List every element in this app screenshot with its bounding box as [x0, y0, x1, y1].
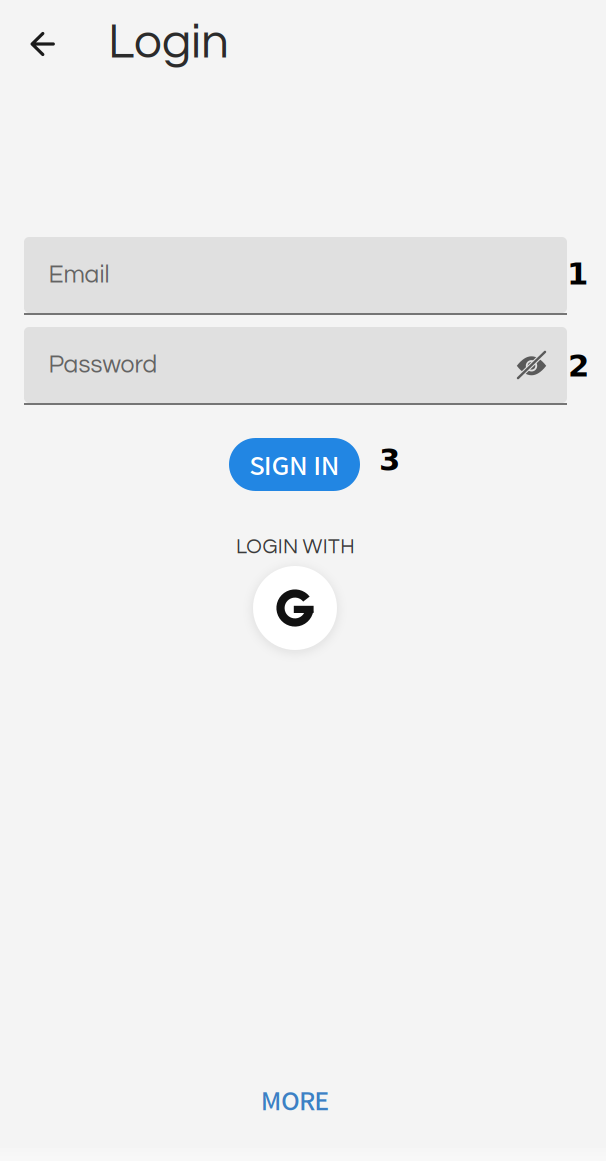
staticText: Login: [108, 17, 229, 68]
button[interactable]: MORE: [235, 1077, 355, 1123]
button[interactable]: Password: [24, 327, 567, 405]
staticText: Email: [48, 262, 109, 288]
staticText: LOGIN WITH: [236, 536, 354, 558]
button[interactable]: Email: [24, 237, 567, 315]
button[interactable]: Sign in with Google: [253, 566, 337, 650]
staticText: SIGN IN: [249, 446, 340, 483]
staticText: 3: [379, 442, 400, 478]
button[interactable]: SIGN IN: [229, 438, 360, 491]
staticText: 1: [567, 256, 588, 292]
button[interactable]: Back: [13, 14, 73, 74]
staticText: MORE: [261, 1082, 329, 1118]
staticText: Password: [48, 352, 157, 378]
staticText: 2: [568, 348, 589, 384]
